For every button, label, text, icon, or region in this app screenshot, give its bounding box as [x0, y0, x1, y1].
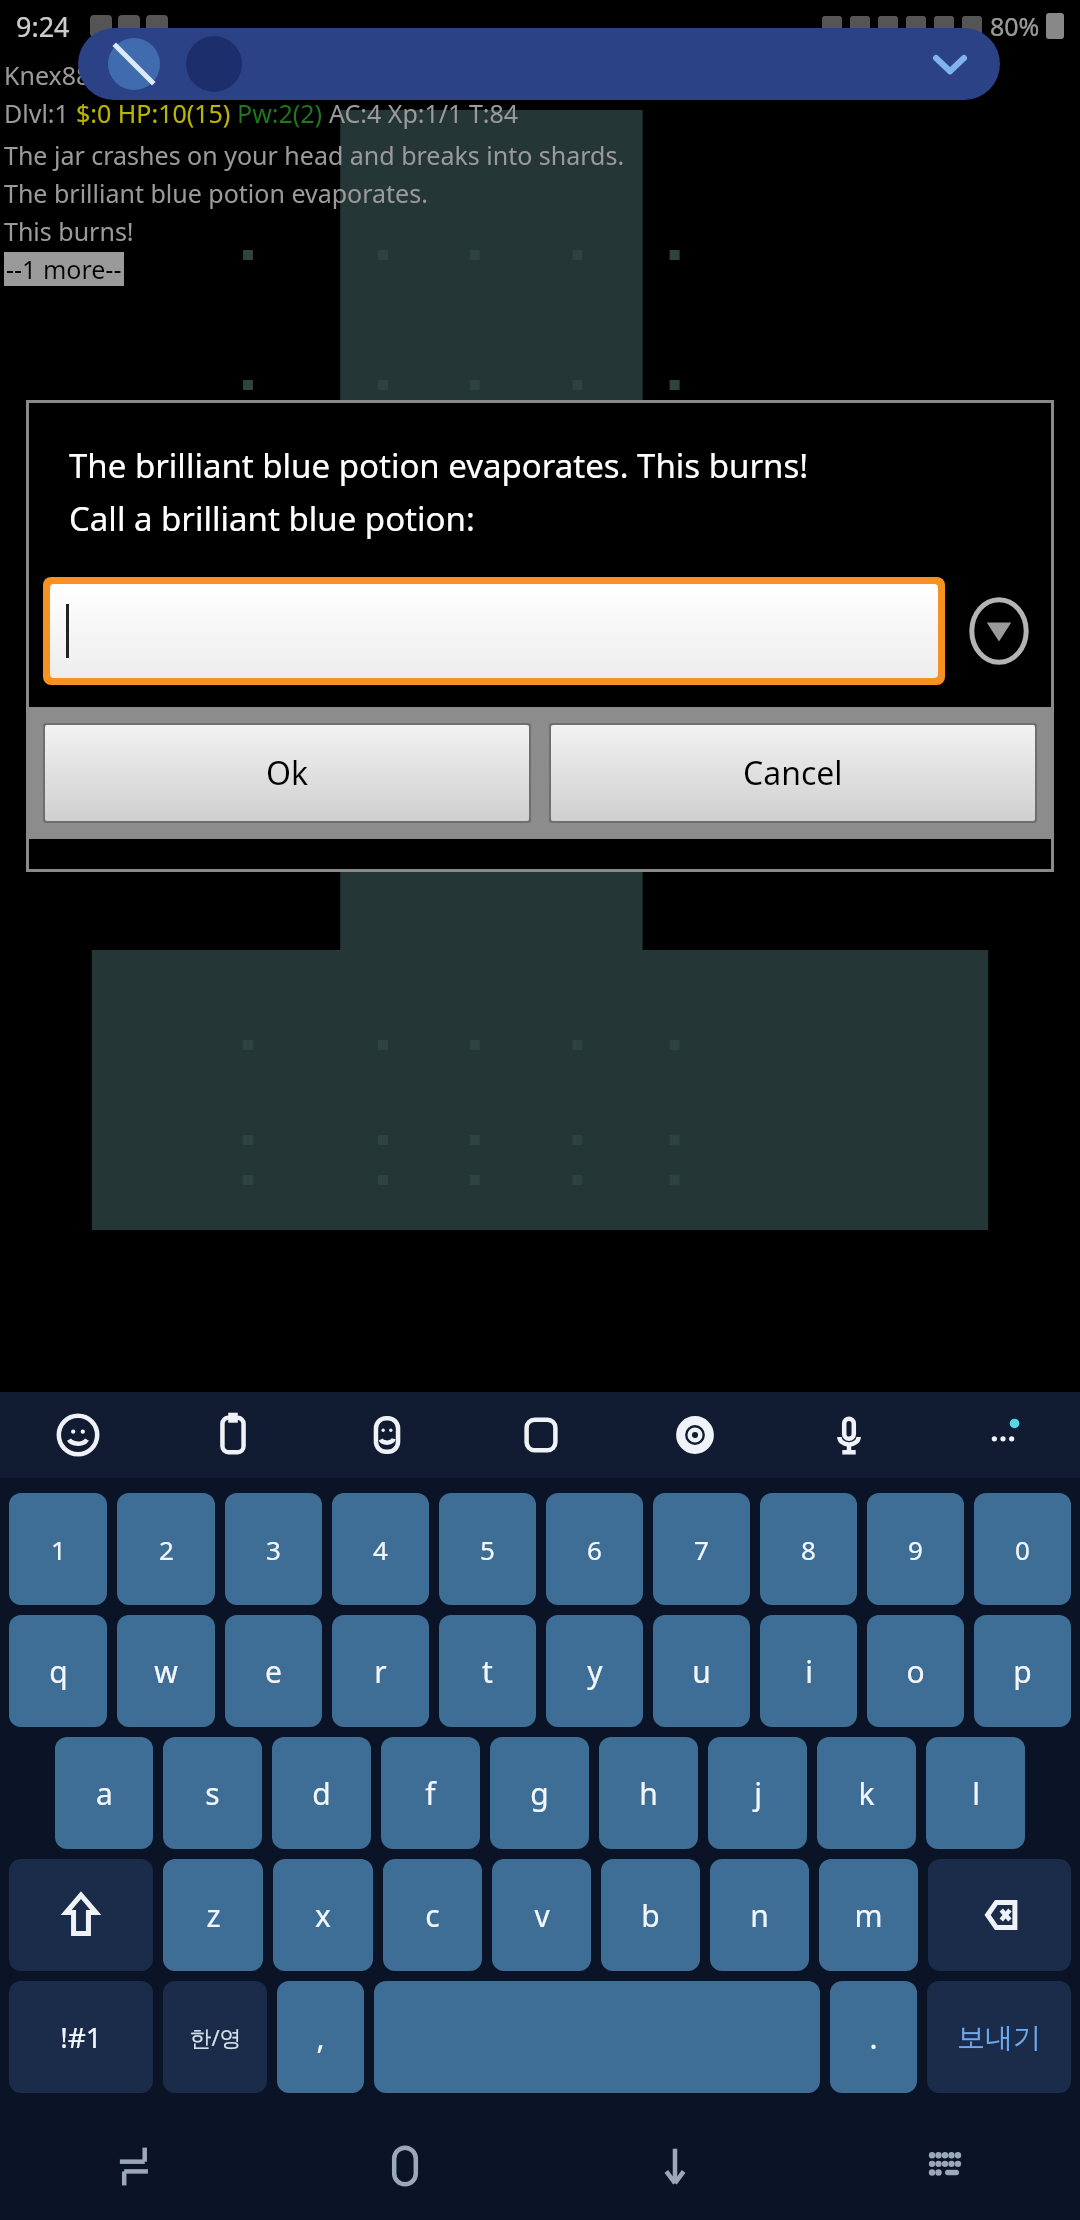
button[interactable] — [374, 1981, 820, 2093]
staticText: 보내기 — [957, 2020, 1041, 2055]
button[interactable]: h — [599, 1737, 698, 1849]
staticText: q — [49, 1651, 68, 1692]
button[interactable]: y — [546, 1615, 643, 1727]
staticText: a — [96, 1773, 113, 1814]
button[interactable]: Notification — [78, 28, 1000, 100]
button[interactable]: 9 — [867, 1493, 964, 1605]
button[interactable]: Stickers — [310, 1392, 464, 1478]
button[interactable]: v — [492, 1859, 591, 1971]
staticText: w — [154, 1651, 178, 1692]
button[interactable]: j — [708, 1737, 807, 1849]
staticText: 80% — [990, 9, 1040, 43]
button[interactable]: Hide keyboard — [540, 2112, 810, 2220]
button[interactable]: Emoji — [0, 1392, 155, 1478]
button[interactable]: !#1 — [9, 1981, 153, 2093]
staticText: 0 — [1015, 1532, 1030, 1567]
button[interactable]: w — [117, 1615, 215, 1727]
button[interactable]: 한/영 — [163, 1981, 267, 2093]
button[interactable]: k — [817, 1737, 916, 1849]
button[interactable]: Settings — [618, 1392, 772, 1478]
button[interactable]: d — [272, 1737, 371, 1849]
button[interactable]: . — [830, 1981, 917, 2093]
staticText: l — [972, 1773, 980, 1814]
button[interactable]: GIF — [464, 1392, 618, 1478]
button[interactable]: l — [926, 1737, 1025, 1849]
button[interactable]: z — [163, 1859, 263, 1971]
staticText: Knex88 the Hatamoto — [4, 58, 261, 92]
button[interactable]: 2 — [117, 1493, 215, 1605]
staticText: t — [482, 1651, 493, 1692]
staticText: f — [425, 1773, 436, 1814]
staticText: 5 — [480, 1532, 495, 1567]
button[interactable]: f — [381, 1737, 480, 1849]
staticText: g — [530, 1773, 549, 1814]
other: Expand — [930, 44, 970, 84]
button[interactable]: 0 — [974, 1493, 1071, 1605]
staticText: !#1 — [60, 2018, 102, 2056]
button[interactable]: Voice input — [772, 1392, 926, 1478]
button[interactable]: s — [163, 1737, 262, 1849]
button[interactable]: i — [760, 1615, 857, 1727]
button[interactable]: 8 — [760, 1493, 857, 1605]
button[interactable]: Change keyboard — [810, 2112, 1080, 2220]
button[interactable]: x — [273, 1859, 373, 1971]
button[interactable]: 6 — [546, 1493, 643, 1605]
button[interactable]: u — [653, 1615, 750, 1727]
button[interactable]: a — [55, 1737, 153, 1849]
staticText: b — [641, 1895, 660, 1936]
button[interactable]: b — [601, 1859, 700, 1971]
button[interactable]: o — [867, 1615, 964, 1727]
button[interactable]: Home — [270, 2112, 540, 2220]
staticText: The brilliant blue potion evaporates. Th… — [69, 443, 809, 488]
staticText: s — [205, 1773, 220, 1814]
button[interactable]: Recents — [0, 2112, 270, 2220]
staticText: 9:24 — [16, 8, 70, 45]
staticText: The brilliant blue potion evaporates. — [4, 176, 428, 210]
staticText: --1 more-- — [6, 252, 122, 286]
staticText: 4 — [373, 1532, 388, 1567]
button[interactable]: p — [974, 1615, 1071, 1727]
button[interactable]: More options — [926, 1392, 1080, 1478]
button[interactable] — [50, 584, 938, 678]
staticText: 한/영 — [189, 2022, 242, 2052]
staticText: n — [750, 1895, 769, 1936]
button[interactable]: n — [710, 1859, 809, 1971]
button[interactable]: q — [9, 1615, 107, 1727]
button[interactable]: 4 — [332, 1493, 429, 1605]
staticText: u — [692, 1651, 711, 1692]
button[interactable]: , — [277, 1981, 364, 2093]
button[interactable]: 1 — [9, 1493, 107, 1605]
button[interactable]: Show suggestions — [965, 597, 1033, 665]
button[interactable]: Backspace — [928, 1859, 1071, 1971]
button[interactable]: 7 — [653, 1493, 750, 1605]
button[interactable]: Clipboard — [155, 1392, 310, 1478]
staticText: 6 — [587, 1532, 602, 1567]
staticText: 1 — [51, 1532, 66, 1567]
button[interactable]: Ok — [45, 725, 529, 821]
staticText: d — [312, 1773, 331, 1814]
staticText: 8 — [801, 1532, 816, 1567]
button[interactable]: c — [383, 1859, 482, 1971]
button[interactable]: t — [439, 1615, 536, 1727]
button[interactable]: r — [332, 1615, 429, 1727]
button[interactable]: e — [225, 1615, 322, 1727]
staticText: j — [754, 1773, 762, 1814]
staticText: c — [425, 1895, 440, 1936]
button[interactable]: 5 — [439, 1493, 536, 1605]
staticText: e — [265, 1651, 282, 1692]
staticText: Pw:2(2) — [237, 96, 329, 130]
staticText: 2 — [159, 1532, 174, 1567]
staticText: m — [854, 1895, 883, 1936]
button[interactable]: g — [490, 1737, 589, 1849]
button[interactable]: Shift — [9, 1859, 153, 1971]
button[interactable]: 보내기 — [927, 1981, 1071, 2093]
staticText: 9 — [908, 1532, 923, 1567]
button[interactable]: 3 — [225, 1493, 322, 1605]
button[interactable]: Cancel — [551, 725, 1035, 821]
staticText: y — [587, 1651, 603, 1692]
staticText: o — [906, 1651, 925, 1692]
button[interactable]: m — [819, 1859, 918, 1971]
staticText: z — [206, 1895, 221, 1936]
